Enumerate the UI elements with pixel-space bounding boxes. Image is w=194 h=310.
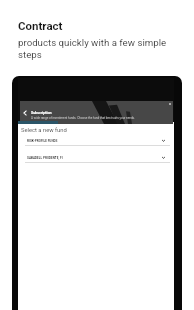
button[interactable]: RISK-PROFILE FUNDS bbox=[18, 137, 174, 148]
button[interactable]: Back bbox=[22, 110, 28, 116]
button[interactable]: SABADELL PRUDENTE, FI bbox=[18, 154, 174, 165]
staticText: products quickly with a few simple steps bbox=[18, 37, 170, 60]
staticText: Select a new fund bbox=[21, 127, 67, 134]
staticText: SABADELL PRUDENTE, FI bbox=[27, 156, 63, 160]
staticText: Contract bbox=[18, 19, 63, 32]
staticText: A wide range of investment funds. Choose… bbox=[31, 116, 135, 120]
staticText: RISK-PROFILE FUNDS bbox=[27, 139, 58, 143]
staticText: Subscription bbox=[31, 111, 52, 115]
button[interactable]: Close bbox=[168, 102, 172, 106]
